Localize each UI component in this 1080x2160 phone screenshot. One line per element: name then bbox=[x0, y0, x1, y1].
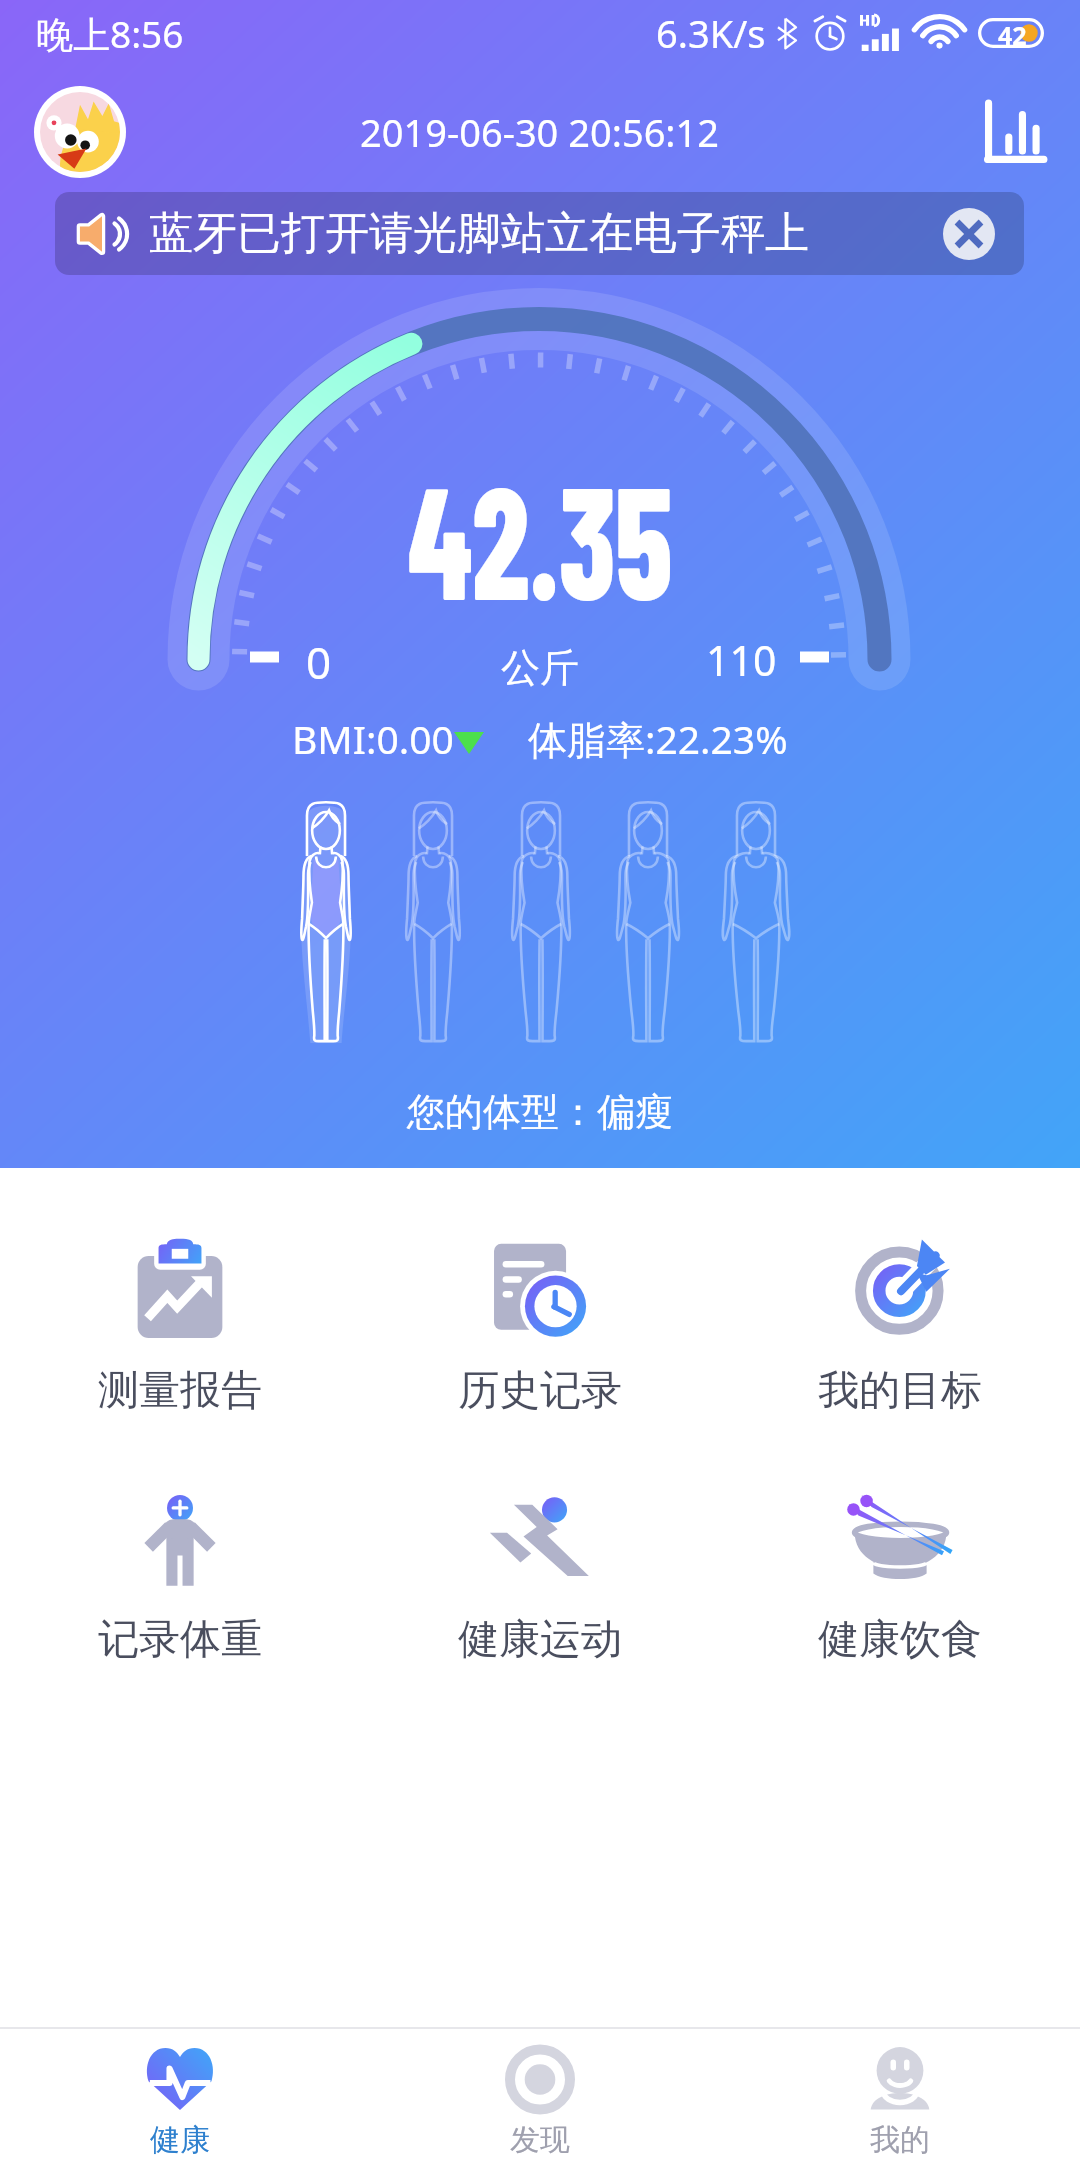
button[interactable]: 健康 bbox=[0, 2048, 360, 2159]
staticText: 2019-06-30 20:56:12 bbox=[360, 106, 720, 158]
button[interactable]: Statistics bbox=[984, 101, 1046, 163]
button[interactable]: 健康运动 bbox=[360, 1483, 720, 1666]
staticText: 记录体重 bbox=[98, 1614, 262, 1666]
button[interactable]: Close bbox=[943, 208, 995, 260]
staticText: 测量报告 bbox=[98, 1365, 262, 1417]
staticText: 6.3K/s bbox=[656, 7, 766, 59]
staticText: 健康 bbox=[150, 2121, 210, 2159]
button[interactable]: 我的目标 bbox=[720, 1234, 1080, 1417]
staticText: 发现 bbox=[510, 2121, 570, 2159]
staticText: 我的 bbox=[870, 2121, 930, 2159]
staticText: 健康饮食 bbox=[818, 1614, 982, 1666]
staticText: BMI:0.00 bbox=[292, 712, 454, 765]
staticText: 公斤 bbox=[501, 643, 579, 692]
staticText: 我的目标 bbox=[818, 1365, 982, 1417]
staticText: 您的体型：偏瘦 bbox=[407, 1088, 673, 1136]
button[interactable]: 发现 bbox=[360, 2048, 720, 2159]
button[interactable]: 测量报告 bbox=[0, 1234, 360, 1417]
staticText: 体脂率:22.23% bbox=[528, 712, 788, 765]
button[interactable]: 蓝牙已打开请光脚站立在电子秤上 bbox=[55, 192, 1024, 275]
staticText: 晚上8:56 bbox=[36, 8, 184, 59]
button[interactable]: 我的 bbox=[720, 2048, 1080, 2159]
button[interactable]: 记录体重 bbox=[0, 1483, 360, 1666]
button[interactable]: 历史记录 bbox=[360, 1234, 720, 1417]
staticText: 历史记录 bbox=[458, 1365, 622, 1417]
staticText: 0 bbox=[306, 632, 332, 692]
staticText: 蓝牙已打开请光脚站立在电子秤上 bbox=[149, 206, 809, 261]
staticText: 健康运动 bbox=[458, 1614, 622, 1666]
staticText: 42 bbox=[998, 18, 1027, 48]
button[interactable]: 健康饮食 bbox=[720, 1483, 1080, 1666]
staticText: 110 bbox=[706, 632, 777, 688]
button[interactable]: Profile bbox=[34, 86, 126, 178]
staticText: 42.35 bbox=[408, 442, 673, 632]
